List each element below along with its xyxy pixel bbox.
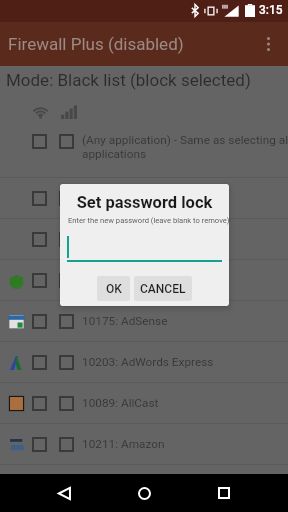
button[interactable]: Recents [204,474,244,512]
staticText: 10203: AdWords Express [82,355,214,369]
button[interactable]: CANCEL [134,276,192,301]
staticText: Applications running as root [82,232,230,246]
staticText: Enter the new password (leave blank to r… [68,216,229,225]
staticText: CANCEL [140,282,186,296]
staticText: Set password lock [60,193,229,212]
button[interactable]: 10203: AdWords Express [0,342,288,383]
staticText: 10175: AdSense [82,314,168,328]
staticText: Kernel [82,191,116,205]
staticText: 3:15 [259,3,283,17]
button[interactable]: More options [248,24,288,64]
button[interactable]: 10000: Acorns [0,260,288,301]
button[interactable]: OK [97,276,130,301]
staticText: Mode: Black list (block selected) [6,70,251,90]
button[interactable]: Back [44,474,84,512]
button[interactable]: (Any application) - Same as selecting al… [0,126,288,178]
button[interactable]: Kernel [0,178,288,219]
button[interactable]: 10175: AdSense [0,301,288,342]
staticText: Firewall Plus (disabled) [8,34,184,54]
button[interactable]: 10089: AllCast [0,383,288,424]
button[interactable]: 10211: Amazon [0,424,288,465]
staticText: 10211: Amazon [82,437,165,451]
staticText: 10089: AllCast [82,396,159,410]
staticText: 10000: Acorns [82,273,159,287]
button[interactable]: Applications running as root [0,219,288,260]
button[interactable]: Home [124,474,164,512]
staticText: OK [106,282,122,296]
staticText: (Any application) - Same as selecting al… [82,133,288,161]
